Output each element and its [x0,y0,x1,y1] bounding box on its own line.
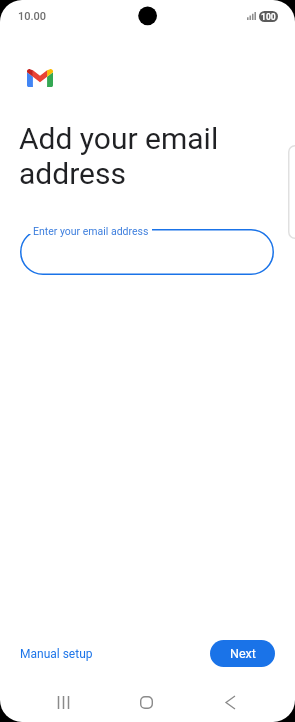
button[interactable]: Home [123,685,170,719]
button[interactable]: Back [207,685,254,719]
staticText: Add your email address [19,121,219,191]
staticText: 100 [261,12,276,22]
staticText: Manual setup [20,647,93,661]
staticText: 10.00 [18,10,47,23]
button[interactable]: Enter your email address [20,229,274,275]
staticText: Enter your email address [33,225,149,237]
button[interactable]: Next [210,640,275,667]
button[interactable]: Recent apps [40,685,87,719]
staticText: Next [230,646,256,661]
button[interactable]: Manual setup [12,641,101,667]
